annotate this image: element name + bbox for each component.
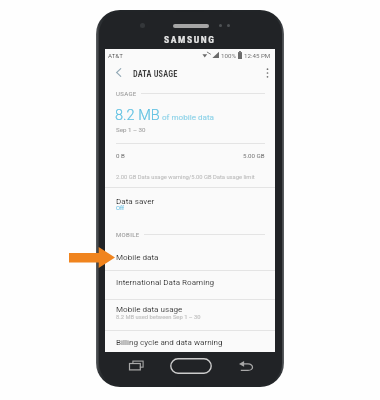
staticText: Mobile data xyxy=(116,252,159,261)
button[interactable] xyxy=(105,299,275,330)
button[interactable]: Recents xyxy=(129,360,144,371)
staticText: Data saver xyxy=(116,196,155,205)
staticText: Mobile data usage xyxy=(116,304,183,313)
staticText: 12:45 PM xyxy=(244,52,271,59)
button[interactable]: Home xyxy=(170,358,212,374)
button[interactable]: Back xyxy=(239,360,254,371)
staticText: DATA USAGE xyxy=(133,69,178,79)
staticText: 2.00 GB Data usage warning/5.00 GB Data … xyxy=(116,174,255,181)
staticText: AT&T xyxy=(108,52,123,59)
staticText: 0 B xyxy=(116,152,125,159)
staticText: 8.2 MB xyxy=(115,106,160,123)
staticText: International Data Roaming xyxy=(116,277,215,286)
staticText: 100% xyxy=(221,52,236,59)
staticText: of mobile data xyxy=(162,112,214,121)
staticText: SAMSUNG xyxy=(164,34,216,45)
button[interactable] xyxy=(105,187,275,234)
button[interactable] xyxy=(105,234,275,270)
staticText: Billing cycle and data warning xyxy=(116,337,223,346)
staticText: 5.00 GB xyxy=(243,152,265,159)
staticText: 8.2 MB used between Sep 1 – 30 xyxy=(116,314,201,321)
staticText: Sep 1 – 30 xyxy=(116,126,146,133)
button[interactable]: Navigate up xyxy=(109,61,127,84)
button[interactable] xyxy=(105,330,275,352)
staticText: Off xyxy=(116,205,125,212)
staticText: MOBILE xyxy=(116,231,140,238)
button[interactable]: More options xyxy=(259,61,275,84)
button[interactable] xyxy=(105,270,275,299)
staticText: USAGE xyxy=(116,90,137,97)
